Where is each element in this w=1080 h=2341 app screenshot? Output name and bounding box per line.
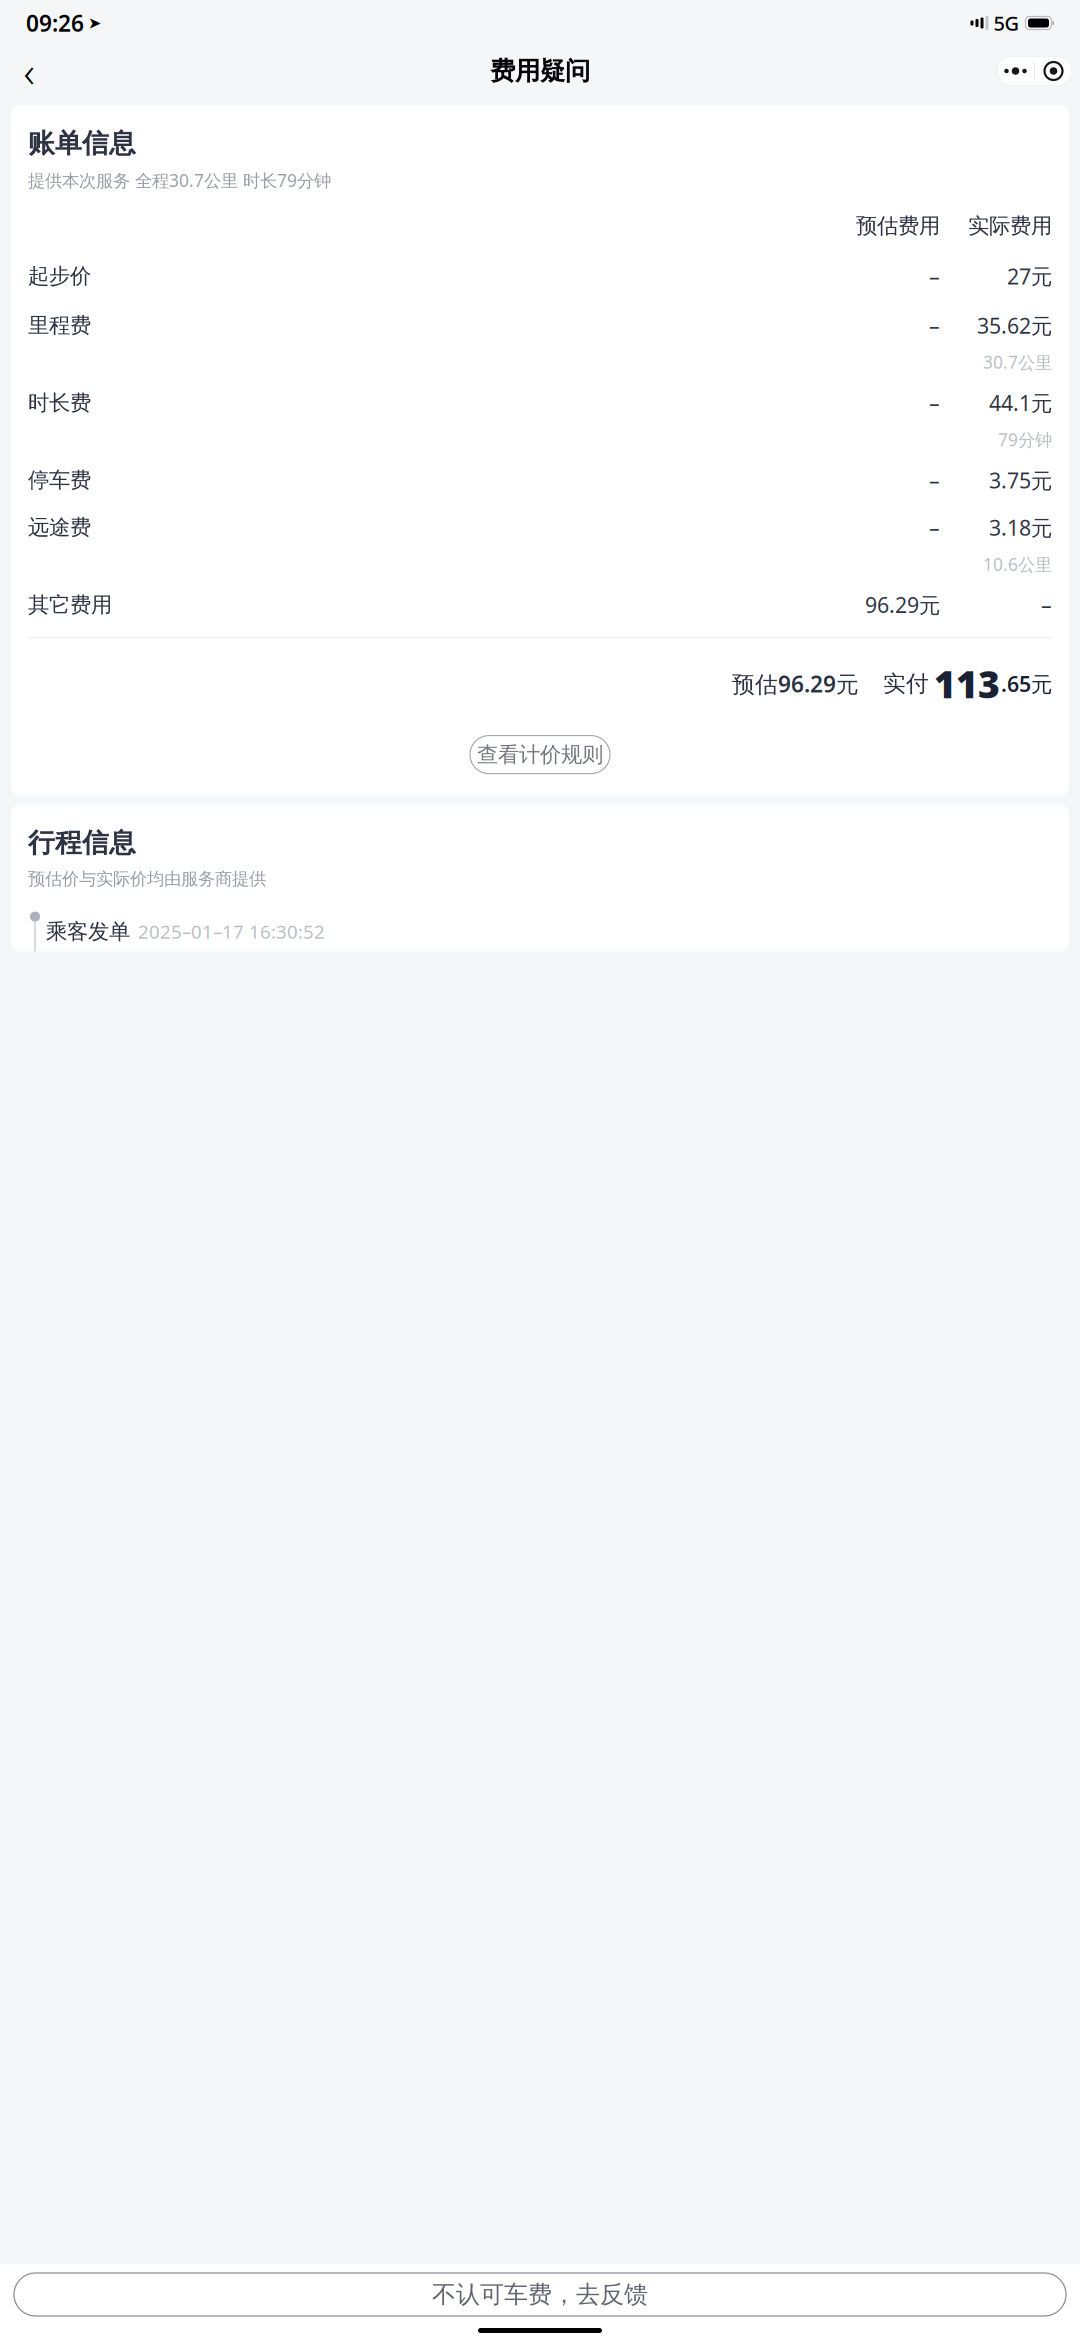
staticText: 96.29元: [865, 591, 940, 619]
staticText: 10.6公里: [983, 553, 1052, 576]
staticText: 里程费: [28, 312, 91, 339]
button[interactable]: More: [997, 56, 1034, 85]
staticText: 远途费: [28, 514, 91, 541]
staticText: 查看计价规则: [477, 741, 603, 768]
staticText: ‹: [23, 43, 34, 99]
staticText: .65元: [1001, 670, 1052, 698]
staticText: 3.18元: [989, 513, 1052, 542]
staticText: –: [929, 389, 940, 417]
staticText: 27元: [1007, 262, 1052, 290]
staticText: 2025–01–17 16:30:52: [138, 919, 325, 944]
staticText: 预估96.29元: [732, 669, 859, 699]
staticText: 乘客发单: [46, 918, 130, 945]
staticText: 预估费用: [856, 213, 940, 239]
staticText: 预估价与实际价均由服务商提供: [28, 868, 266, 890]
staticText: –: [929, 466, 940, 494]
staticText: 实际费用: [968, 213, 1052, 239]
staticText: 起步价: [28, 263, 91, 289]
staticText: –: [929, 513, 940, 542]
staticText: 实付: [883, 670, 929, 698]
button[interactable]: Close mini program: [1035, 56, 1072, 85]
button[interactable]: Back: [8, 50, 50, 92]
staticText: –: [1041, 591, 1052, 619]
staticText: 3.75元: [989, 466, 1052, 494]
staticText: –: [929, 311, 940, 340]
button[interactable]: 不认可车费，去反馈: [14, 2273, 1066, 2316]
staticText: 09:26: [26, 8, 84, 38]
staticText: 79分钟: [998, 428, 1052, 451]
staticText: ➤: [88, 14, 101, 32]
staticText: 账单信息: [28, 127, 136, 160]
staticText: 44.1元: [989, 389, 1052, 417]
staticText: –: [929, 262, 940, 290]
staticText: 费用疑问: [490, 55, 590, 86]
button[interactable]: 查看计价规则: [470, 736, 610, 774]
staticText: 30.7公里: [983, 351, 1052, 374]
staticText: 113: [934, 659, 1000, 709]
staticText: 35.62元: [977, 311, 1052, 340]
staticText: 5G: [993, 10, 1019, 36]
staticText: 行程信息: [28, 827, 136, 859]
staticText: 不认可车费，去反馈: [432, 2280, 648, 2309]
staticText: 时长费: [28, 390, 91, 416]
staticText: 提供本次服务 全程30.7公里 时长79分钟: [28, 169, 331, 192]
staticText: 停车费: [28, 467, 91, 493]
staticText: 其它费用: [28, 592, 112, 618]
